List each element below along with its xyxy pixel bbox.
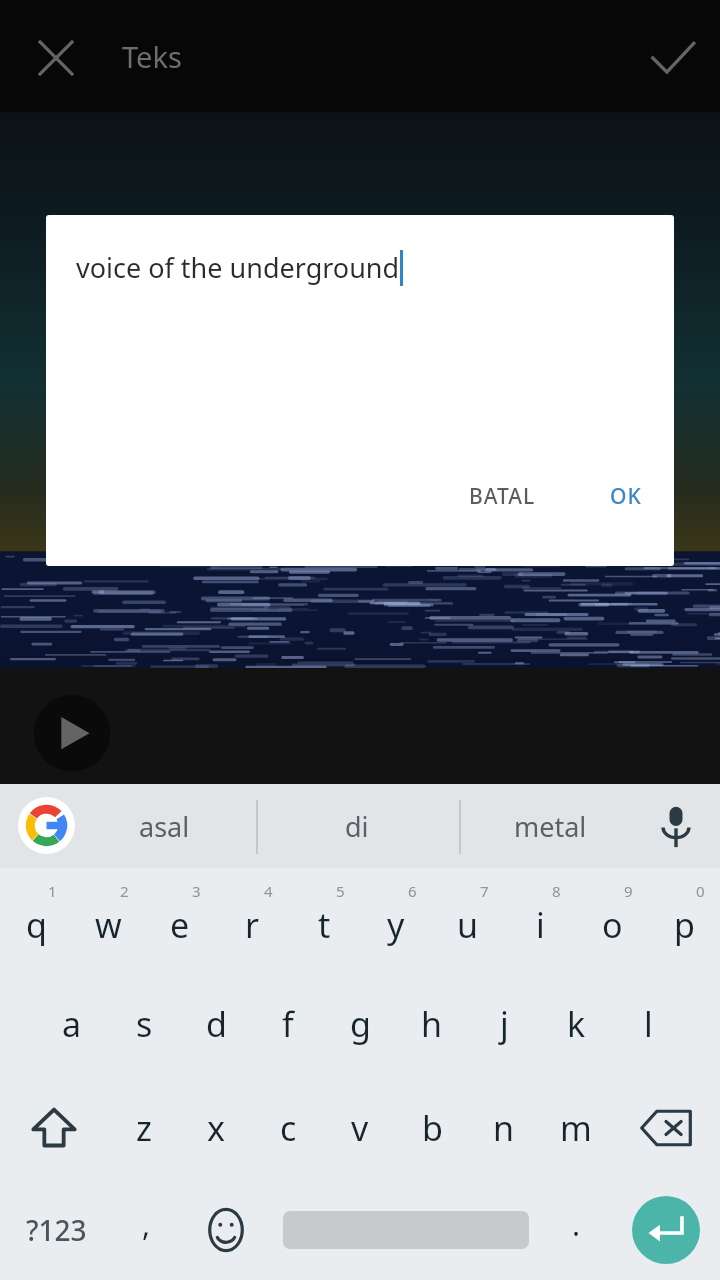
staticText: q <box>26 902 47 948</box>
staticText: 0 <box>696 881 705 901</box>
staticText: m <box>560 1105 592 1151</box>
staticText: w <box>95 902 122 948</box>
staticText: l <box>644 1001 653 1047</box>
staticText: p <box>674 902 695 948</box>
staticText: asal <box>139 808 190 845</box>
button[interactable]: w <box>72 868 144 972</box>
staticText: n <box>493 1105 515 1151</box>
button[interactable]: m <box>540 1076 612 1180</box>
staticText: ?123 <box>26 1211 87 1249</box>
button[interactable]: Backspace <box>612 1076 720 1180</box>
button[interactable]: Shift <box>0 1076 108 1180</box>
button[interactable]: x <box>180 1076 252 1180</box>
button[interactable]: e <box>144 868 216 972</box>
button[interactable]: f <box>252 972 324 1076</box>
staticText: 2 <box>120 881 129 901</box>
button[interactable]: Emoji <box>180 1180 272 1280</box>
staticText: u <box>457 902 479 948</box>
staticText: Teks <box>122 37 182 76</box>
staticText: t <box>318 902 331 948</box>
button[interactable]: Done <box>640 26 704 90</box>
button[interactable]: k <box>540 972 612 1076</box>
staticText: di <box>345 808 369 845</box>
staticText: BATAL <box>469 482 536 511</box>
button[interactable]: di <box>267 784 447 868</box>
button[interactable]: g <box>324 972 396 1076</box>
staticText: 3 <box>192 881 201 901</box>
staticText: r <box>245 902 260 948</box>
button[interactable]: i <box>504 868 576 972</box>
staticText: 6 <box>408 881 417 901</box>
button[interactable]: b <box>396 1076 468 1180</box>
staticText: 9 <box>624 881 633 901</box>
staticText: 4 <box>264 881 273 901</box>
button[interactable]: , <box>112 1180 180 1280</box>
button[interactable]: Voice input <box>652 802 700 850</box>
button[interactable]: l <box>612 972 684 1076</box>
button[interactable]: j <box>468 972 540 1076</box>
staticText: h <box>421 1001 443 1047</box>
button[interactable]: OK <box>592 470 660 523</box>
button[interactable]: . <box>540 1180 612 1280</box>
staticText: , <box>142 1204 151 1245</box>
button[interactable]: Space <box>272 1180 540 1280</box>
button[interactable]: p <box>648 868 720 972</box>
button[interactable]: t <box>288 868 360 972</box>
staticText: s <box>136 1001 153 1047</box>
button[interactable]: y <box>360 868 432 972</box>
staticText: OK <box>610 482 642 511</box>
button[interactable]: v <box>324 1076 396 1180</box>
staticText: 1 <box>48 881 57 901</box>
staticText: d <box>206 1001 227 1047</box>
button[interactable]: o <box>576 868 648 972</box>
button[interactable]: Enter <box>612 1180 720 1280</box>
staticText: a <box>62 1001 82 1047</box>
button[interactable]: ?123 <box>0 1180 112 1280</box>
staticText: z <box>136 1105 152 1151</box>
staticText: y <box>387 902 405 948</box>
staticText: g <box>350 1001 371 1047</box>
staticText: 8 <box>552 881 561 901</box>
button[interactable]: h <box>396 972 468 1076</box>
button[interactable]: q <box>0 868 72 972</box>
button[interactable]: metal <box>460 784 640 868</box>
staticText: o <box>602 902 623 948</box>
button[interactable]: Close <box>24 26 88 90</box>
button[interactable]: r <box>216 868 288 972</box>
button[interactable]: a <box>36 972 108 1076</box>
staticText: metal <box>514 808 587 845</box>
button[interactable]: u <box>432 868 504 972</box>
staticText: i <box>536 902 545 948</box>
staticText: voice of the underground <box>76 249 400 286</box>
button[interactable]: asal <box>74 784 254 868</box>
staticText: f <box>282 1001 294 1047</box>
button[interactable]: BATAL <box>451 470 554 523</box>
staticText: . <box>572 1204 581 1245</box>
staticText: 5 <box>336 881 345 901</box>
button[interactable]: s <box>108 972 180 1076</box>
staticText: j <box>500 1001 509 1047</box>
button[interactable]: d <box>180 972 252 1076</box>
staticText: b <box>422 1105 443 1151</box>
staticText: 7 <box>480 881 489 901</box>
staticText: x <box>207 1105 225 1151</box>
button[interactable]: Google search <box>18 797 75 854</box>
staticText: k <box>567 1001 586 1047</box>
staticText: e <box>170 902 190 948</box>
button[interactable]: z <box>108 1076 180 1180</box>
button[interactable]: n <box>468 1076 540 1180</box>
staticText: v <box>351 1105 369 1151</box>
staticText: c <box>280 1105 297 1151</box>
button[interactable]: c <box>252 1076 324 1180</box>
